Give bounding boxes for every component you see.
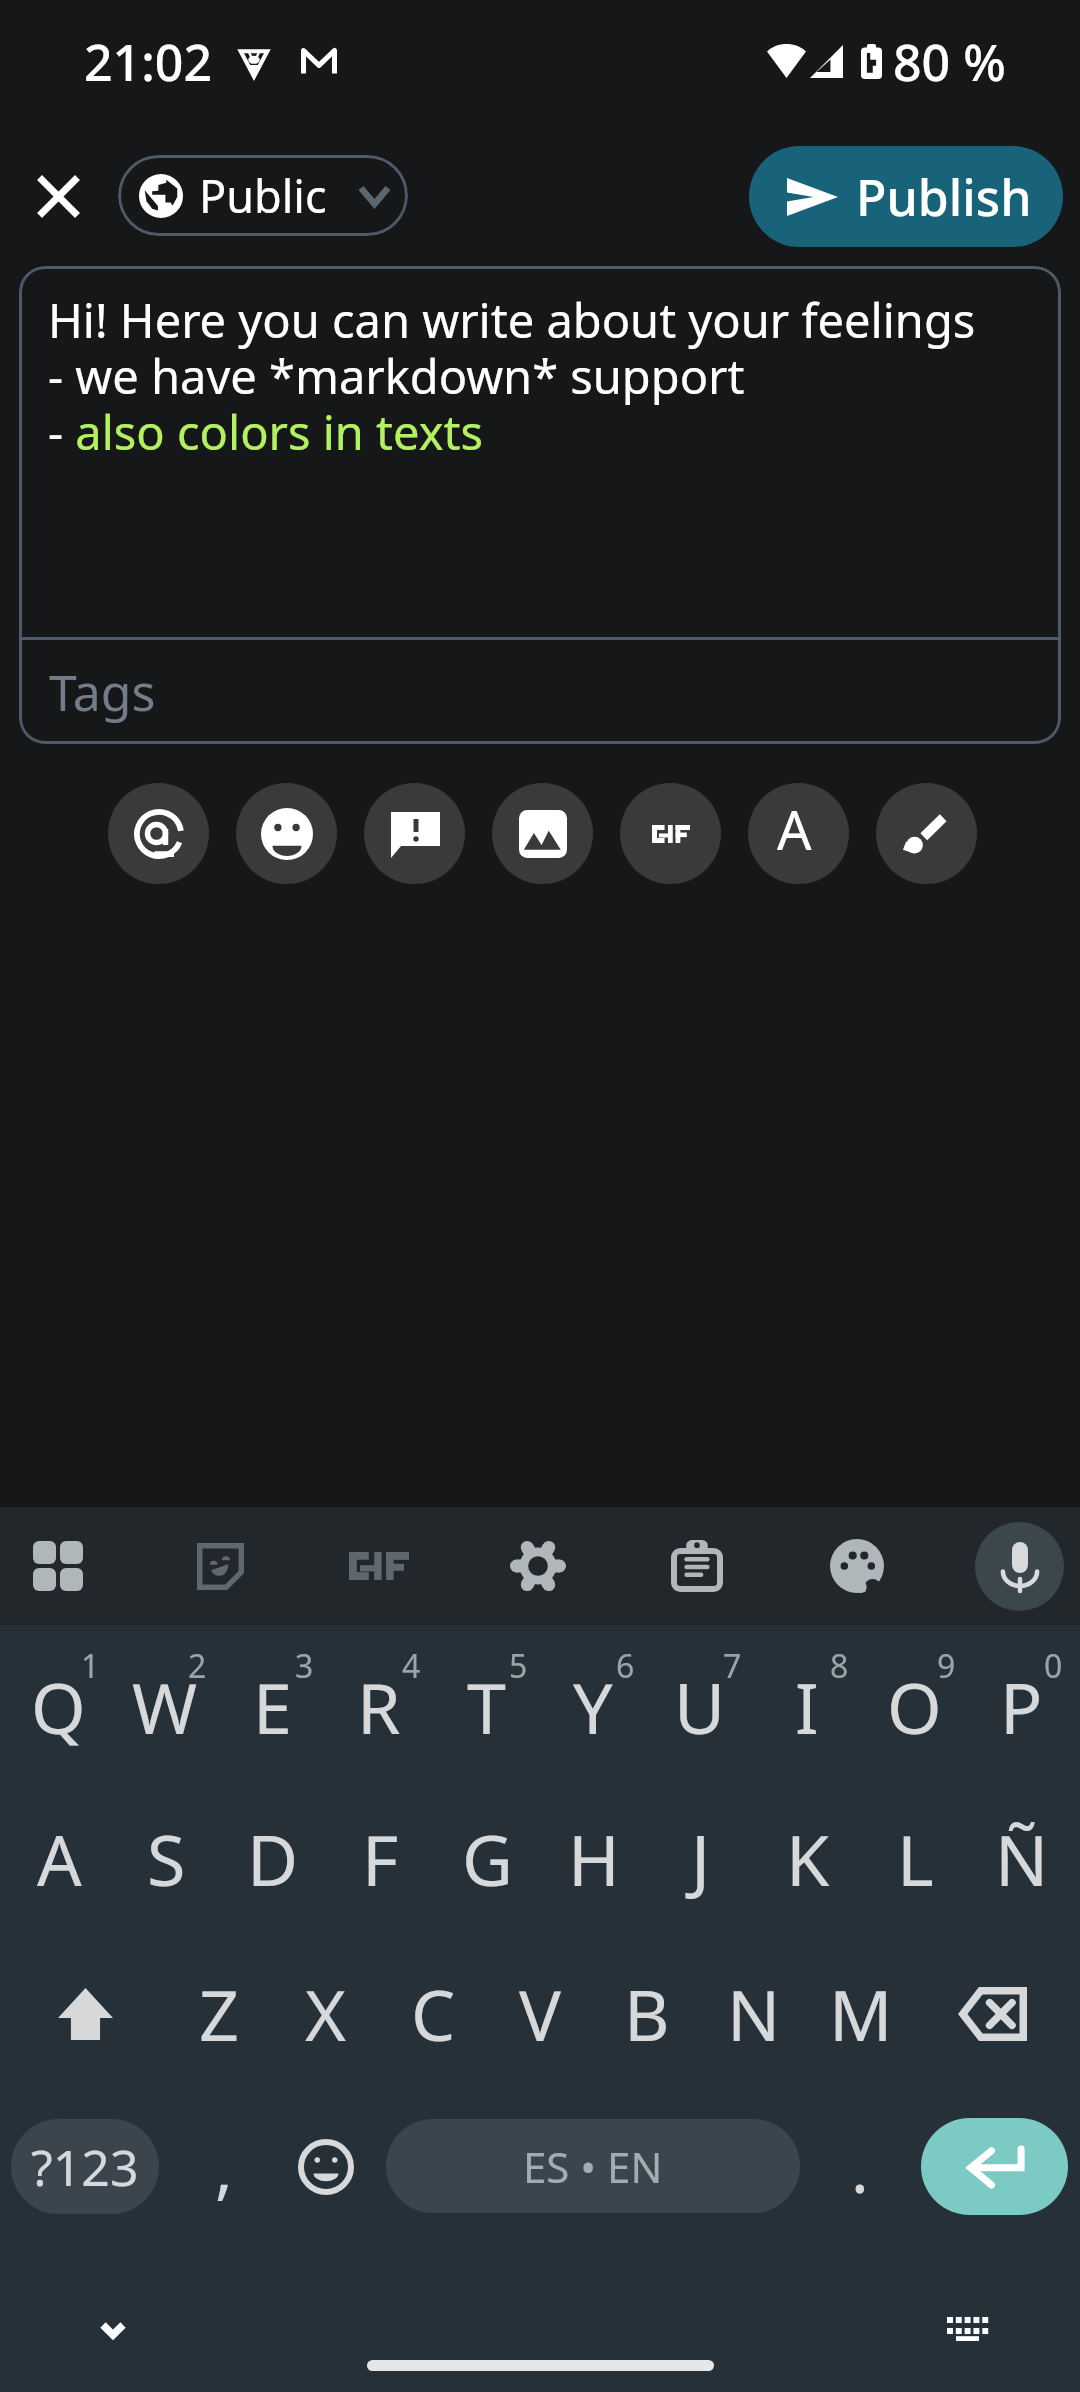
staticText: 3 <box>295 1644 314 1688</box>
button[interactable]: Tags <box>19 640 1061 744</box>
button[interactable]: N <box>700 1937 808 2089</box>
button[interactable]: ?123 <box>11 2119 159 2214</box>
button[interactable]: S <box>112 1782 220 1934</box>
button[interactable]: M <box>807 1937 915 2089</box>
button[interactable]: R <box>325 1630 433 1782</box>
button[interactable]: B <box>593 1937 701 2089</box>
staticText: A <box>37 1811 82 1906</box>
staticText: K <box>786 1811 830 1906</box>
button[interactable]: G <box>433 1782 541 1934</box>
button[interactable]: Hi! Here you can write about your feelin… <box>19 266 1061 638</box>
staticText: ?123 <box>31 2133 139 2201</box>
button[interactable]: Publish <box>749 146 1063 247</box>
button[interactable]: Theme <box>813 1522 901 1610</box>
button[interactable]: GIF <box>620 783 721 884</box>
button[interactable]: Enter <box>921 2118 1068 2215</box>
button[interactable]: Y <box>539 1630 647 1782</box>
button[interactable]: Content warning <box>364 783 465 884</box>
button[interactable]: F <box>326 1782 434 1934</box>
button[interactable]: GIF <box>335 1522 423 1610</box>
button[interactable]: W <box>111 1630 219 1782</box>
button[interactable]: A <box>5 1782 113 1934</box>
staticText: E <box>253 1659 292 1754</box>
staticText: Q <box>31 1659 86 1754</box>
button[interactable]: Apps <box>14 1522 102 1610</box>
button[interactable]: Shift <box>31 1938 139 2090</box>
staticText: 5 <box>509 1644 528 1688</box>
staticText: O <box>887 1659 942 1754</box>
staticText: 21:02 <box>84 28 212 88</box>
button[interactable]: Image <box>492 783 593 884</box>
staticText: 8 <box>830 1644 849 1688</box>
button[interactable]: O <box>860 1630 968 1782</box>
staticText: 7 <box>723 1644 742 1688</box>
staticText: P <box>1000 1659 1043 1754</box>
button[interactable]: Backspace <box>939 1938 1047 2090</box>
staticText: H <box>568 1811 620 1906</box>
button[interactable]: Voice input <box>975 1522 1064 1611</box>
staticText: L <box>897 1811 934 1906</box>
staticText: J <box>691 1811 711 1906</box>
staticText: 9 <box>937 1644 956 1688</box>
button[interactable]: E <box>218 1630 326 1782</box>
button[interactable]: . <box>806 2105 914 2229</box>
button[interactable]: Hide keyboard <box>69 2285 157 2375</box>
staticText: V <box>519 1966 561 2061</box>
staticText: I <box>795 1659 819 1754</box>
button[interactable]: Emoji <box>272 2105 380 2229</box>
button[interactable]: J <box>647 1782 755 1934</box>
staticText: B <box>624 1966 670 2061</box>
button[interactable]: , <box>170 2105 278 2229</box>
button[interactable]: Ñ <box>968 1782 1076 1934</box>
button[interactable]: Mention <box>108 783 209 884</box>
staticText: W <box>132 1659 198 1754</box>
staticText: 4 <box>402 1644 421 1688</box>
button[interactable]: H <box>540 1782 648 1934</box>
button[interactable]: Text format <box>748 783 849 884</box>
button[interactable]: ES • EN <box>386 2119 800 2213</box>
staticText: 1 <box>81 1644 100 1688</box>
staticText: 6 <box>616 1644 635 1688</box>
staticText: Hi! Here you can write about your feelin… <box>48 288 976 464</box>
staticText: R <box>357 1659 401 1754</box>
button[interactable]: Switch keyboard <box>923 2285 1011 2373</box>
button[interactable]: C <box>379 1937 487 2089</box>
staticText: 0 <box>1044 1644 1063 1688</box>
button[interactable]: Stickers <box>176 1522 264 1610</box>
staticText: 2 <box>188 1644 207 1688</box>
staticText: S <box>147 1811 186 1906</box>
staticText: D <box>247 1811 299 1906</box>
staticText: N <box>727 1966 781 2061</box>
button[interactable]: Q <box>4 1630 112 1782</box>
button[interactable]: Settings <box>494 1522 582 1610</box>
staticText: Ñ <box>995 1811 1049 1906</box>
staticText: T <box>467 1659 506 1754</box>
button[interactable]: I <box>753 1630 861 1782</box>
staticText: Y <box>573 1659 613 1754</box>
button[interactable]: K <box>754 1782 862 1934</box>
button[interactable]: Draw <box>876 783 977 884</box>
staticText: X <box>305 1966 347 2061</box>
button[interactable]: Public <box>118 155 408 236</box>
staticText: Publish <box>856 163 1032 231</box>
button[interactable]: P <box>967 1630 1075 1782</box>
staticText: . <box>851 2122 869 2212</box>
staticText: Public <box>199 165 327 226</box>
button[interactable]: U <box>646 1630 754 1782</box>
staticText: A <box>777 792 812 866</box>
button[interactable]: Clipboard <box>653 1522 741 1610</box>
staticText: G <box>462 1811 513 1906</box>
button[interactable]: X <box>272 1937 380 2089</box>
button[interactable]: Emoji <box>236 783 337 884</box>
button[interactable]: Z <box>165 1937 273 2089</box>
button[interactable]: T <box>432 1630 540 1782</box>
button[interactable]: Close <box>14 152 102 240</box>
staticText: , <box>215 2122 233 2212</box>
staticText: F <box>362 1811 399 1906</box>
staticText: Z <box>199 1966 240 2061</box>
button[interactable]: L <box>861 1782 969 1934</box>
button[interactable]: V <box>486 1937 594 2089</box>
staticText: C <box>411 1966 456 2061</box>
staticText: M <box>829 1966 893 2061</box>
button[interactable]: D <box>219 1782 327 1934</box>
